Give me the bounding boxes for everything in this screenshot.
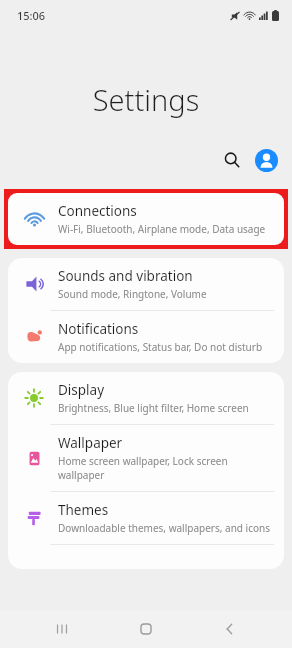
staticText: Wi-Fi, Bluetooth, Airplane mode, Data us… [58, 222, 266, 236]
staticText: Connections [58, 202, 137, 220]
staticText: Display [58, 381, 105, 399]
button[interactable]: Themes [8, 492, 284, 544]
button[interactable]: Recents [40, 610, 84, 648]
staticText: Home screen wallpaper, Lock screen wallp… [58, 454, 274, 482]
staticText: Brightness, Blue light filter, Home scre… [58, 401, 249, 415]
staticText: App notifications, Status bar, Do not di… [58, 340, 263, 354]
button[interactable]: Back [208, 610, 252, 648]
staticText: Notifications [58, 320, 139, 338]
staticText: Themes [58, 501, 109, 519]
button[interactable]: Connections [8, 193, 284, 245]
staticText: Wallpaper [58, 434, 123, 452]
staticText: Sounds and vibration [58, 267, 193, 285]
button[interactable]: Display [8, 372, 284, 424]
staticText: Sound mode, Ringtone, Volume [58, 287, 207, 301]
button[interactable]: Sounds and vibration [8, 258, 284, 310]
staticText: Downloadable themes, wallpapers, and ico… [58, 521, 270, 535]
button[interactable]: Search [215, 143, 249, 177]
button[interactable]: Home [124, 610, 168, 648]
button[interactable]: Account [255, 149, 278, 172]
staticText: Settings [0, 80, 292, 119]
button[interactable]: Wallpaper [8, 425, 284, 491]
button[interactable]: Notifications [8, 311, 284, 363]
staticText: 15:06 [17, 8, 46, 23]
